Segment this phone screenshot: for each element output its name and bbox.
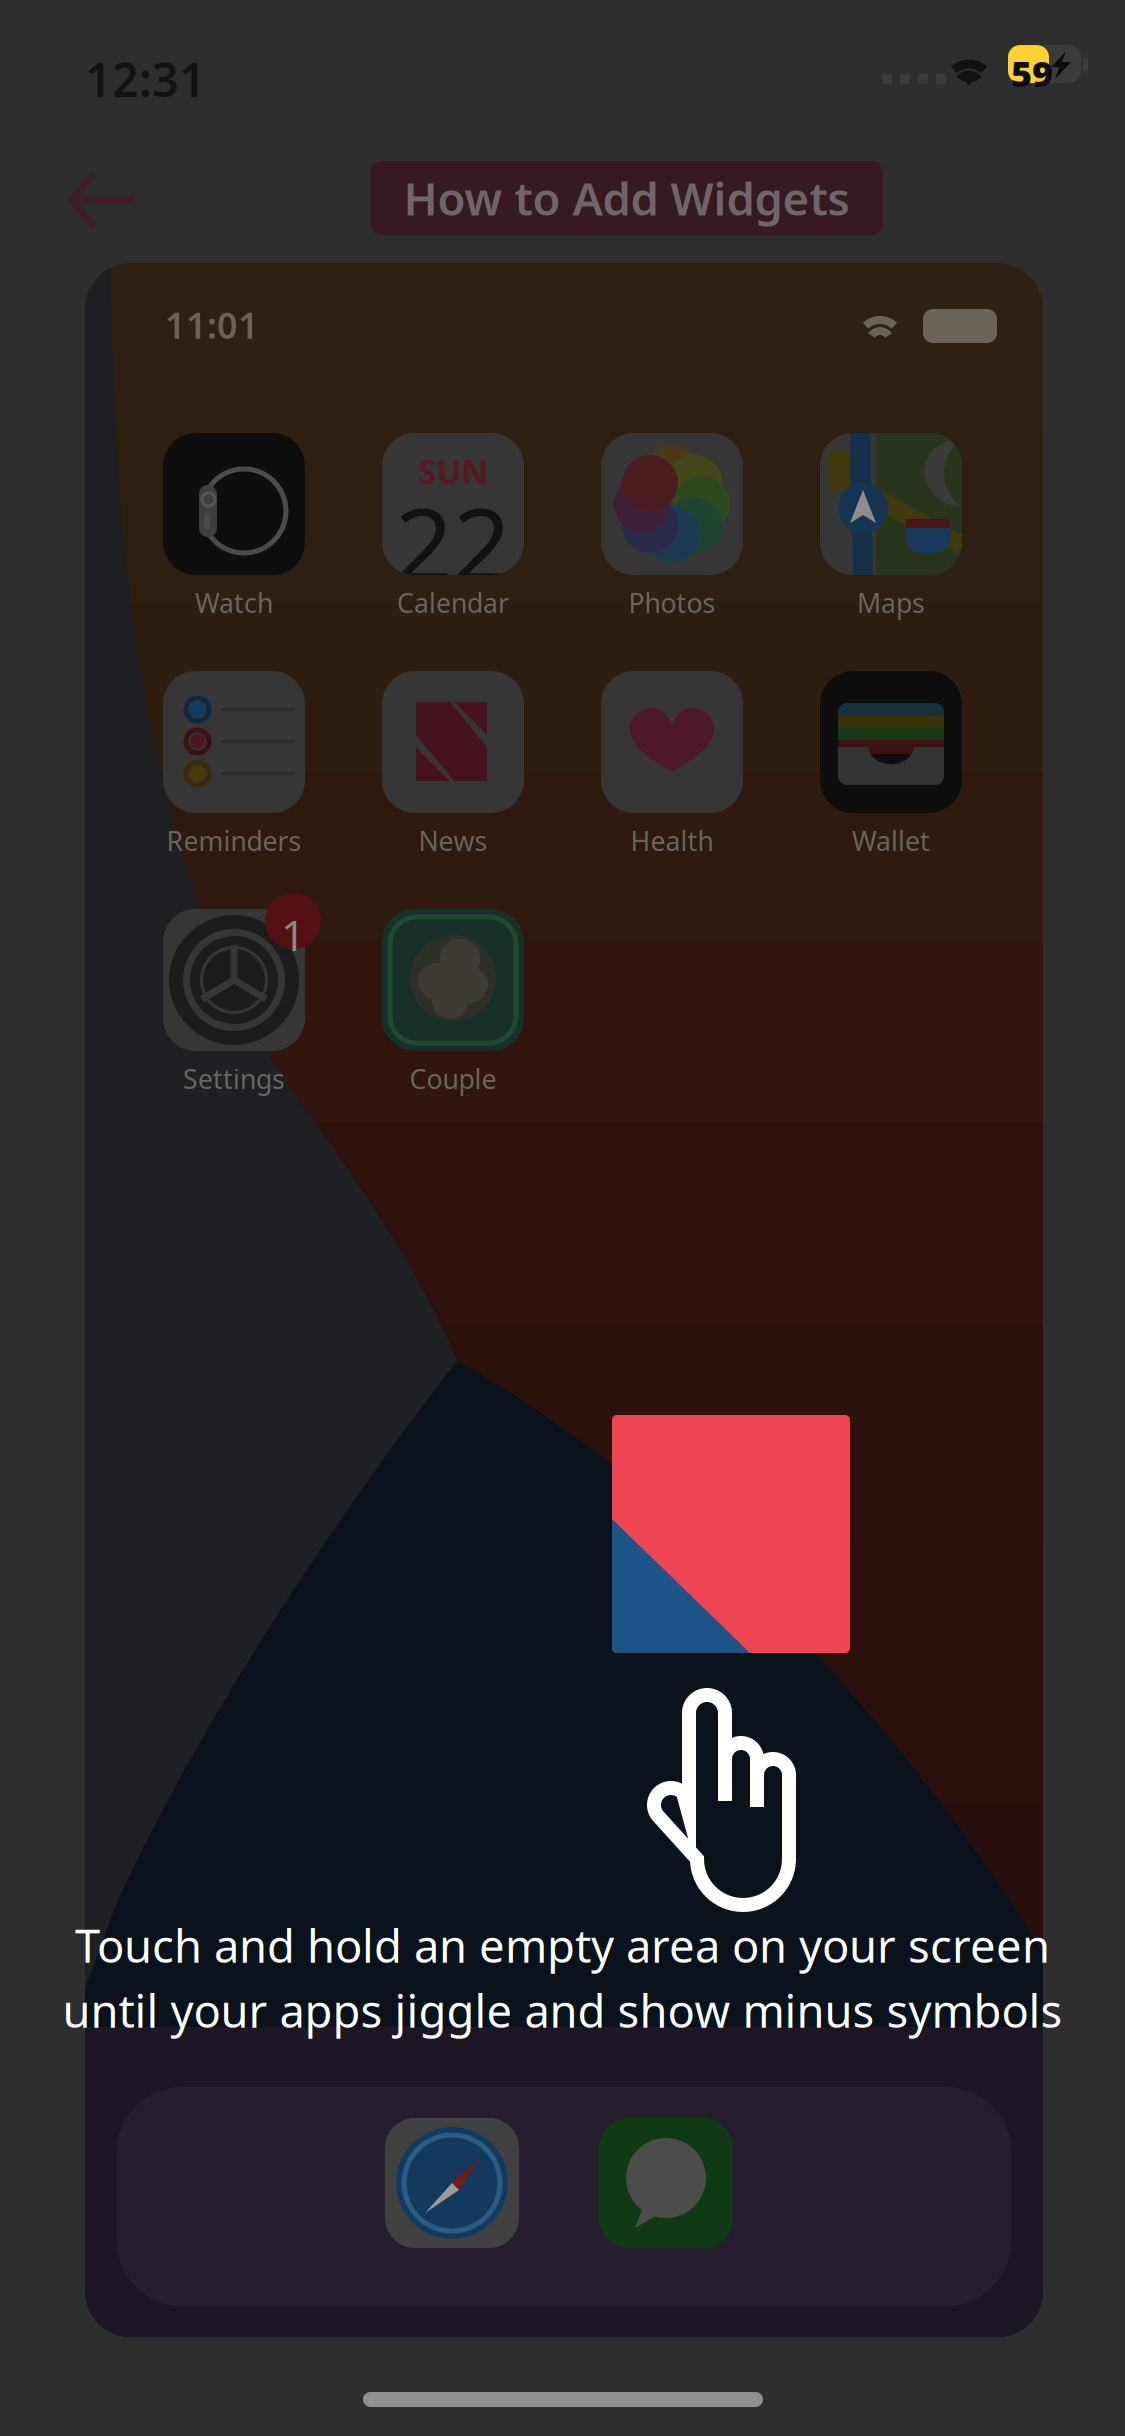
- staticText: Watch: [195, 585, 273, 620]
- staticText: Calendar: [397, 585, 509, 620]
- button[interactable]: Back: [66, 163, 146, 235]
- staticText: 59: [1011, 49, 1053, 97]
- staticText: 12:31: [85, 48, 206, 110]
- staticText: until your apps jiggle and show minus sy…: [62, 1980, 1062, 2040]
- staticText: News: [418, 823, 487, 858]
- staticText: Maps: [857, 585, 925, 620]
- staticText: 1: [281, 906, 305, 963]
- staticText: 11:01: [165, 301, 259, 349]
- staticText: Photos: [628, 585, 715, 620]
- staticText: Couple: [409, 1061, 496, 1096]
- staticText: Wallet: [852, 823, 930, 858]
- staticText: Reminders: [166, 823, 301, 858]
- staticText: SUN: [418, 449, 488, 493]
- staticText: Health: [630, 823, 713, 858]
- staticText: Touch and hold an empty area on your scr…: [75, 1915, 1050, 1975]
- staticText: Settings: [183, 1061, 285, 1096]
- staticText: 22: [395, 475, 511, 610]
- staticText: How to Add Widgets: [403, 168, 849, 228]
